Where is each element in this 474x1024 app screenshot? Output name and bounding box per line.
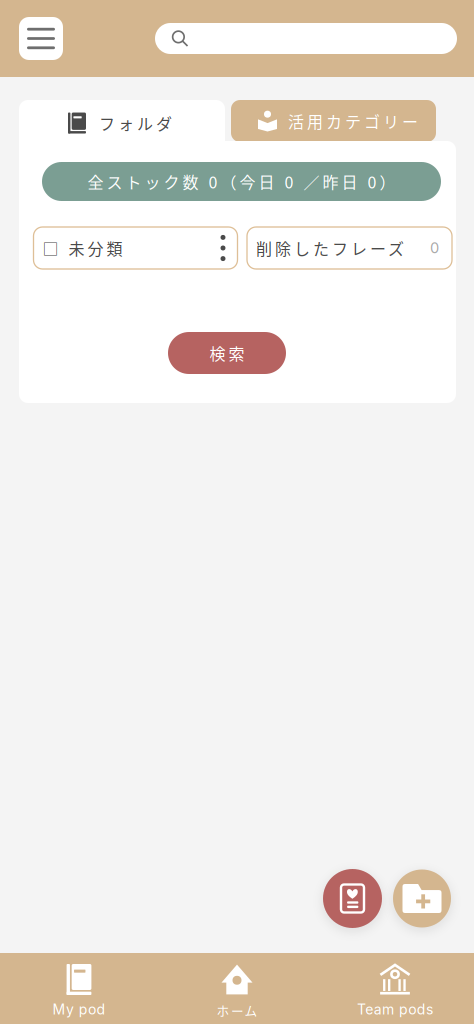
button[interactable]: Menu <box>19 17 63 60</box>
staticText: My pod <box>52 1001 105 1018</box>
staticText: 削除したフレーズ <box>256 236 404 260</box>
button[interactable]: Team pods <box>316 953 474 1024</box>
button[interactable]: 活用カテゴリー <box>231 100 436 142</box>
staticText: □ 未分類 <box>42 236 122 260</box>
staticText: 全ストック数 0（今日 0 ／昨日 0） <box>87 170 395 193</box>
button[interactable]: New phrase <box>323 869 382 928</box>
staticText: 検索 <box>209 341 244 365</box>
staticText: Team pods <box>357 1001 433 1018</box>
button[interactable]: フォルダ <box>19 100 225 158</box>
button[interactable]: My pod <box>0 953 158 1024</box>
button[interactable]: 削除したフレーズ <box>247 227 452 269</box>
staticText: 活用カテゴリー <box>288 109 418 133</box>
button[interactable]: 検索 <box>168 332 286 374</box>
button[interactable]: New folder <box>393 869 451 927</box>
staticText: フォルダ <box>99 111 172 135</box>
staticText: ホーム <box>216 1001 257 1019</box>
button[interactable]: Search <box>155 23 457 54</box>
button[interactable]: ホーム <box>158 953 316 1024</box>
button[interactable]: □ 未分類 <box>33 227 237 269</box>
staticText: 0 <box>430 239 439 257</box>
